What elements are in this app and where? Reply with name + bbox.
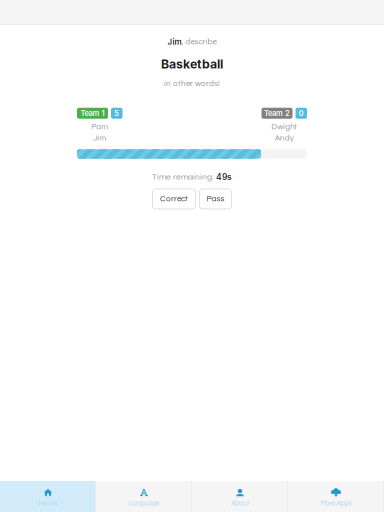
button[interactable]: Correct [152,189,195,209]
staticText: Basketball [161,57,223,71]
staticText: Home [38,500,57,507]
staticText: Pam [91,123,108,131]
button[interactable]: Language [96,481,192,512]
staticText: 0 [299,109,304,118]
staticText: Team 2 [264,109,290,118]
staticText: Language [128,500,159,507]
staticText: Jim [167,37,181,47]
staticText: , describe [181,38,216,46]
button[interactable]: Pass [199,189,231,209]
staticText: Correct [160,195,188,203]
staticText: Jim [93,134,106,142]
button[interactable]: About [192,481,288,512]
button[interactable]: More Apps [288,481,384,512]
staticText: Andy [275,134,294,142]
staticText: Time remaining: [152,172,216,181]
staticText: Team 1 [80,109,104,118]
staticText: Pass [206,195,224,203]
staticText: in other words! [164,79,220,88]
staticText: Dwight [271,123,297,131]
staticText: More Apps [320,500,351,507]
button[interactable]: Home [0,481,96,512]
staticText: 49s [216,172,232,182]
staticText: 5 [114,109,119,118]
staticText: About [231,500,249,507]
